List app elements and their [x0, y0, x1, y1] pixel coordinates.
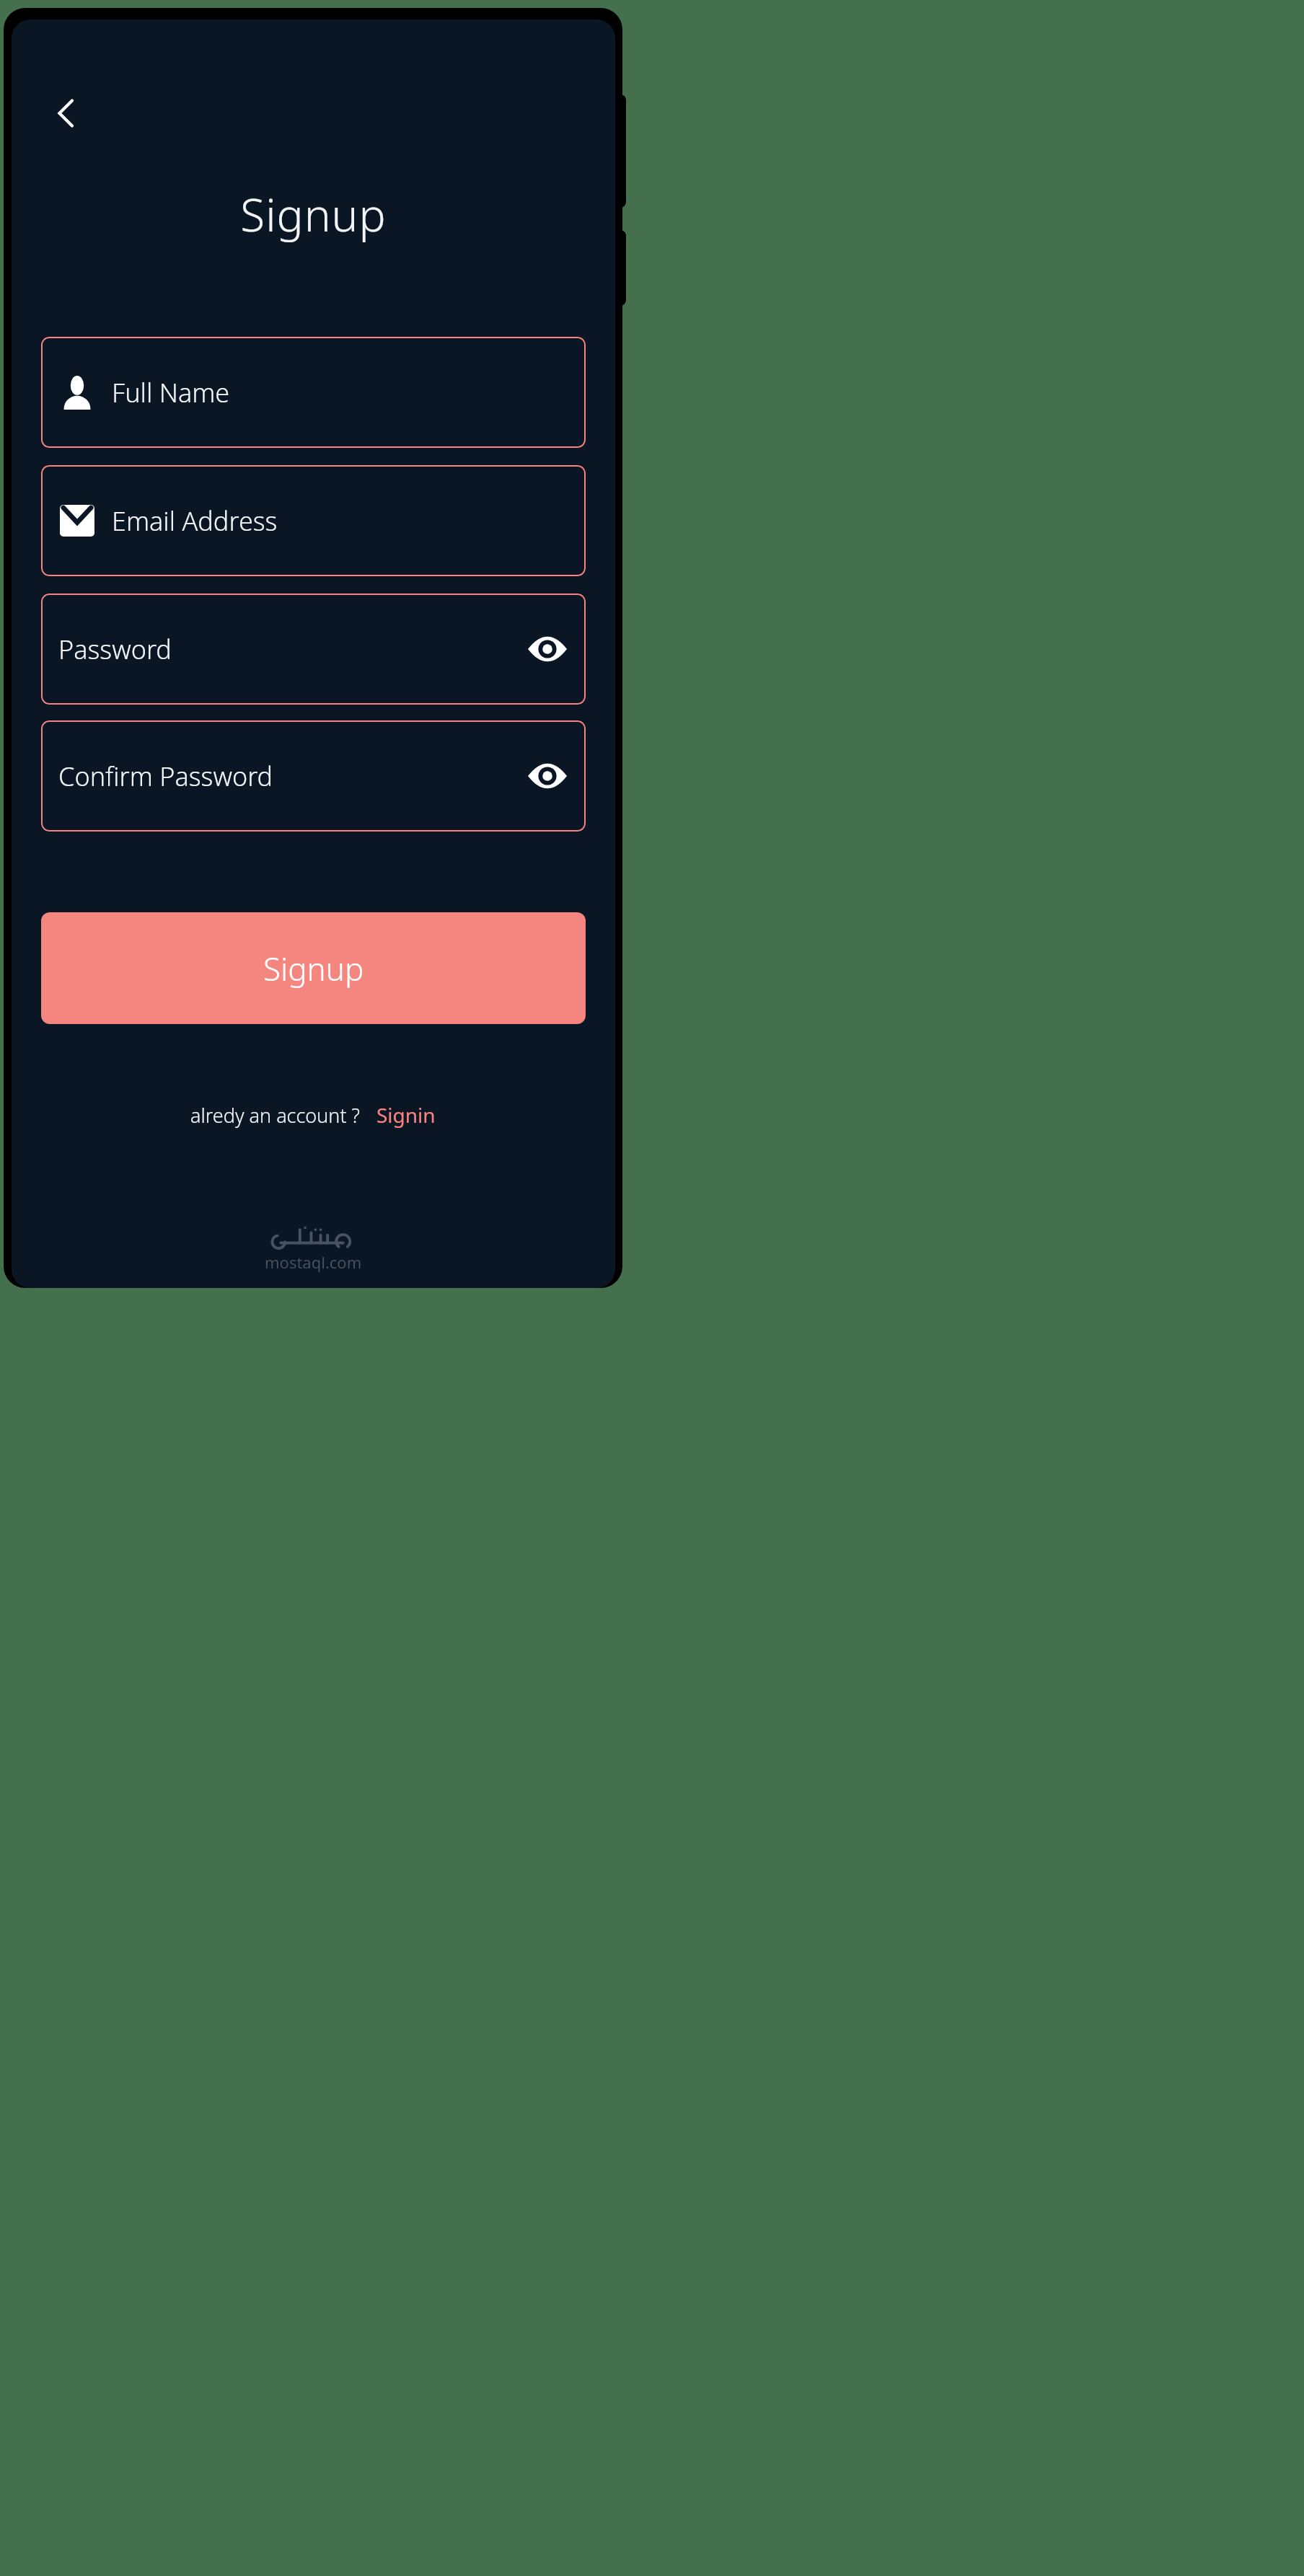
button[interactable]: Password [41, 594, 586, 705]
staticText: mostaql.com [265, 1251, 362, 1273]
staticText: Confirm Password [58, 759, 527, 794]
staticText: Email Address [112, 503, 568, 539]
button[interactable]: Signin [375, 1100, 437, 1130]
staticText: Full Name [112, 375, 568, 410]
button[interactable]: Email Address [41, 465, 586, 576]
staticText: Signup [263, 947, 364, 990]
button[interactable]: Back [43, 90, 89, 136]
staticText: Signin [376, 1101, 436, 1129]
staticText: alredy an account ? [190, 1102, 361, 1129]
button[interactable]: Confirm Password [41, 720, 586, 832]
button[interactable]: Toggle password visibility [527, 633, 568, 665]
button[interactable]: Full Name [41, 337, 586, 448]
button[interactable]: Signup [41, 912, 586, 1024]
staticText: Password [58, 632, 527, 667]
button[interactable]: Toggle password visibility [527, 760, 568, 792]
staticText: Signup [12, 184, 615, 244]
